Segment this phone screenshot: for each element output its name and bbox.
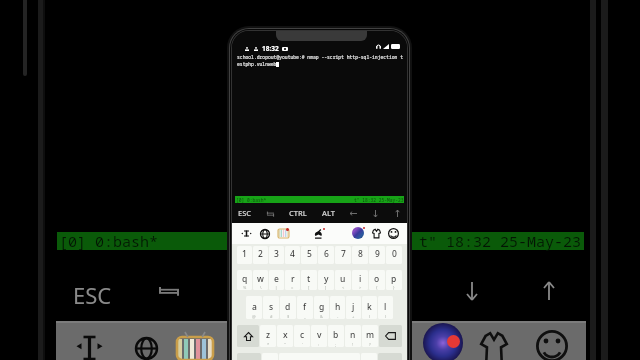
staticText: t" 18:32 25-May-23 (419, 231, 582, 251)
button[interactable]: Stickers (478, 330, 510, 360)
button[interactable]: m (362, 325, 378, 347)
staticText: \ (260, 285, 262, 290)
button[interactable]: s (263, 296, 279, 319)
button[interactable]: Handwriting (314, 228, 325, 239)
button[interactable]: 9 (369, 246, 385, 264)
button[interactable]: y (318, 270, 334, 290)
staticText: x (283, 329, 288, 341)
button[interactable]: Arrow down (465, 282, 479, 300)
button[interactable]: f (297, 296, 313, 319)
button[interactable]: d (280, 296, 296, 319)
staticText: j (352, 301, 355, 313)
staticText: c (300, 329, 305, 341)
staticText: q (242, 273, 248, 285)
button[interactable]: Emoji (536, 330, 568, 360)
button[interactable]: q (237, 270, 252, 290)
staticText: 1 (242, 248, 247, 260)
button[interactable]: o (369, 270, 385, 290)
button[interactable]: Assistant (423, 323, 463, 360)
staticText: ALT (322, 208, 335, 218)
button[interactable]: Emoji (388, 228, 399, 239)
staticText: estphp.vulnweb (237, 61, 277, 67)
button[interactable]: Change language (135, 337, 158, 360)
staticText: d (285, 301, 291, 313)
button[interactable]: z (260, 325, 276, 347)
button[interactable]: u (335, 270, 351, 290)
button[interactable]: Shift (237, 325, 259, 347)
button[interactable]: Tab (265, 209, 276, 218)
staticText: ! (352, 342, 354, 347)
button[interactable]: 8 (352, 246, 368, 264)
button[interactable]: j (346, 296, 361, 319)
button[interactable]: a (246, 296, 262, 319)
button[interactable]: Stickers (371, 228, 382, 239)
button[interactable]: Arrow up (392, 208, 403, 219)
staticText: l (384, 301, 387, 313)
button[interactable]: Arrow up (542, 282, 556, 300)
staticText: e (274, 273, 279, 285)
button[interactable]: t (301, 270, 317, 290)
staticText: 9 (375, 248, 380, 260)
button[interactable]: Assistant (352, 227, 364, 239)
button[interactable]: b (328, 325, 344, 347)
button[interactable]: l (378, 296, 393, 319)
staticText: [0] 0:bash* (236, 197, 267, 203)
button[interactable]: Change language (260, 229, 270, 239)
staticText: b (333, 329, 339, 341)
button[interactable]: ESC (236, 208, 254, 218)
staticText: f (303, 301, 307, 313)
staticText: w (257, 273, 264, 285)
button[interactable]: 4 (285, 246, 300, 264)
button[interactable]: 3 (269, 246, 284, 264)
button[interactable]: k (362, 296, 377, 319)
button[interactable]: 5 (301, 246, 317, 264)
button[interactable]: Arrow down (370, 208, 381, 219)
staticText: p (391, 273, 397, 285)
staticText: & (320, 314, 323, 319)
staticText: $ (287, 314, 290, 319)
staticText: < (342, 285, 345, 290)
staticText: r (291, 273, 295, 285)
staticText: + (352, 314, 355, 319)
staticText: = (291, 285, 294, 290)
button[interactable]: c (294, 325, 310, 347)
button[interactable]: Themes (278, 228, 289, 239)
staticText: ) (385, 314, 387, 319)
staticText: [0] 0:bash* (59, 231, 159, 251)
button[interactable]: 0 (386, 246, 402, 264)
button[interactable]: n (345, 325, 361, 347)
button[interactable]: p (386, 270, 402, 290)
button[interactable]: Text cursor (242, 229, 251, 238)
button[interactable]: 1 (237, 246, 252, 264)
button[interactable]: CTRL (287, 208, 309, 218)
staticText: 6 (324, 248, 329, 260)
staticText: @ (252, 314, 256, 319)
staticText: CTRL (289, 208, 307, 218)
button[interactable]: 2 (253, 246, 268, 264)
button[interactable]: w (253, 270, 268, 290)
button[interactable]: h (330, 296, 345, 319)
button[interactable]: Arrow left (348, 208, 359, 219)
staticText: | (275, 285, 278, 290)
button[interactable]: 7 (335, 246, 351, 264)
button[interactable]: r (285, 270, 300, 290)
button[interactable]: Backspace (379, 325, 402, 347)
staticText: % (243, 285, 247, 290)
button[interactable]: 6 (318, 246, 334, 264)
button[interactable]: x (277, 325, 293, 347)
staticText: 0 (392, 248, 397, 260)
button[interactable]: ESC (73, 280, 112, 310)
button[interactable]: g (314, 296, 329, 319)
button[interactable]: Text cursor (76, 334, 103, 360)
button[interactable]: e (269, 270, 284, 290)
button[interactable]: ALT (320, 208, 337, 218)
button[interactable]: Tab (159, 283, 179, 299)
button[interactable]: v (311, 325, 327, 347)
button[interactable]: i (352, 270, 368, 290)
button[interactable]: Themes (177, 332, 213, 360)
